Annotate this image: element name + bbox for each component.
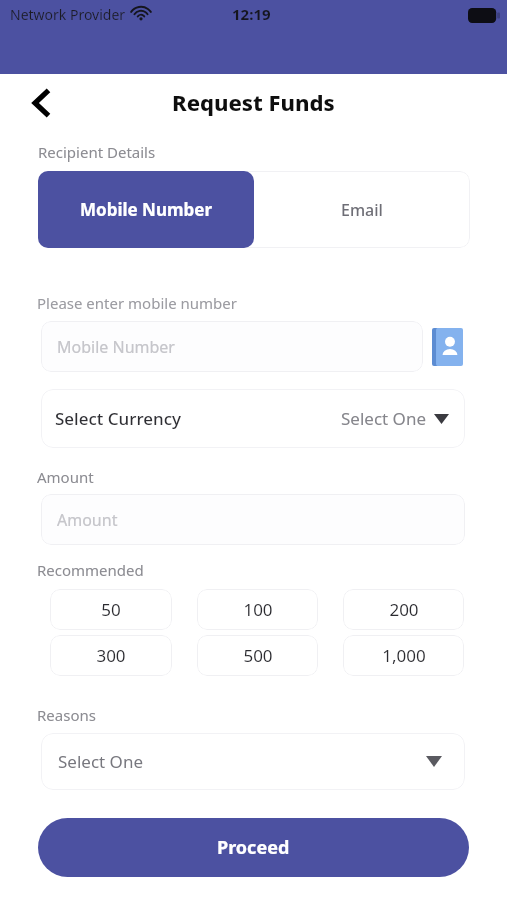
- staticText: Select One: [341, 407, 426, 430]
- staticText: 50: [101, 598, 121, 621]
- staticText: Reasons: [37, 705, 96, 725]
- staticText: 500: [243, 644, 273, 667]
- staticText: 12:19: [232, 4, 271, 24]
- button[interactable]: 50: [50, 589, 172, 630]
- staticText: Select One: [58, 750, 143, 773]
- button[interactable]: Mobile Number: [38, 171, 254, 248]
- staticText: 1,000: [382, 644, 426, 667]
- button[interactable]: Select One: [41, 733, 465, 790]
- button[interactable]: 500: [197, 635, 318, 676]
- staticText: Proceed: [217, 835, 290, 860]
- staticText: Please enter mobile number: [37, 293, 237, 313]
- staticText: Mobile Number: [57, 336, 175, 358]
- button[interactable]: Email: [254, 171, 470, 248]
- staticText: Network Provider: [10, 5, 126, 24]
- button[interactable]: Back: [20, 82, 62, 124]
- button[interactable]: Choose contact: [432, 328, 463, 366]
- button[interactable]: Proceed: [38, 818, 469, 877]
- staticText: Recipient Details: [38, 142, 156, 162]
- staticText: 300: [96, 644, 126, 667]
- staticText: Email: [341, 199, 383, 221]
- staticText: 200: [389, 598, 419, 621]
- staticText: 100: [243, 598, 273, 621]
- button[interactable]: 100: [197, 589, 318, 630]
- button[interactable]: Mobile Number: [41, 321, 423, 372]
- staticText: Amount: [37, 467, 94, 487]
- button[interactable]: 200: [343, 589, 464, 630]
- button[interactable]: Select Currency: [41, 389, 465, 448]
- staticText: Recommended: [37, 560, 144, 580]
- staticText: Mobile Number: [80, 198, 213, 221]
- staticText: Select Currency: [55, 407, 181, 430]
- button[interactable]: Amount: [41, 494, 465, 545]
- staticText: Amount: [57, 509, 118, 531]
- staticText: Request Funds: [172, 87, 335, 117]
- button[interactable]: 1,000: [343, 635, 464, 676]
- button[interactable]: 300: [50, 635, 172, 676]
